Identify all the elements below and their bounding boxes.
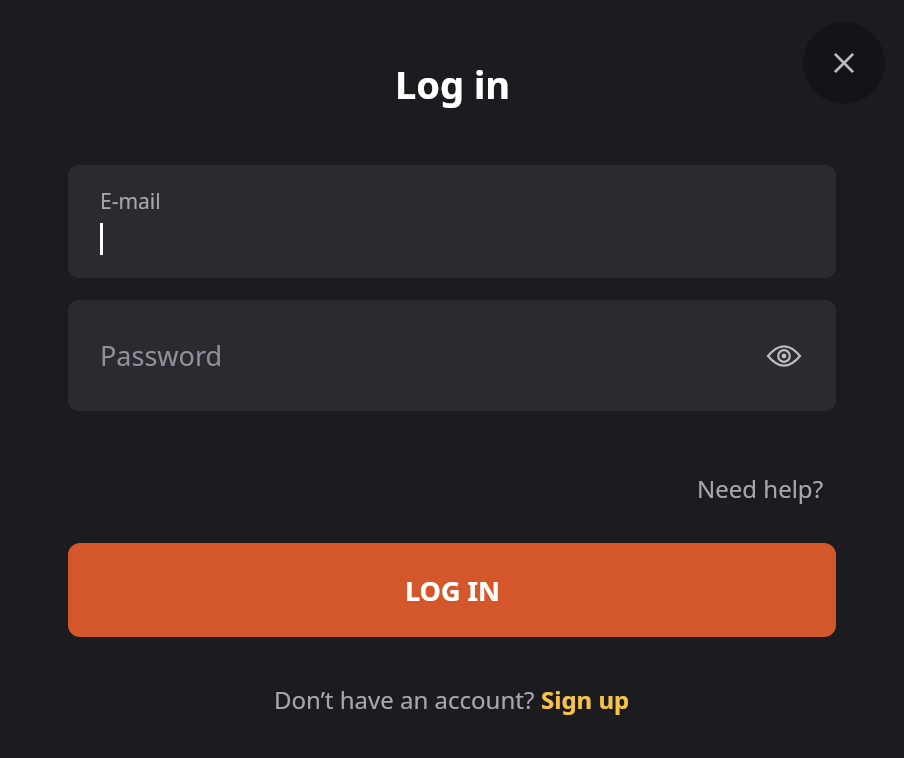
staticText: Need help? xyxy=(697,472,824,505)
button[interactable]: Need help? xyxy=(681,464,840,513)
staticText: Sign up xyxy=(541,683,630,716)
button[interactable]: Show password xyxy=(756,328,812,384)
staticText: E-mail xyxy=(100,187,161,216)
button[interactable]: E-mail xyxy=(68,165,836,278)
staticText: Don’t have an account? xyxy=(274,683,541,716)
button[interactable]: Close xyxy=(803,22,885,104)
button[interactable]: Password xyxy=(68,300,836,411)
button[interactable]: Sign up xyxy=(541,683,630,716)
staticText: LOG IN xyxy=(405,572,500,609)
button[interactable]: LOG IN xyxy=(68,543,836,637)
staticText: Log in xyxy=(395,58,510,110)
staticText: Password xyxy=(100,337,223,374)
